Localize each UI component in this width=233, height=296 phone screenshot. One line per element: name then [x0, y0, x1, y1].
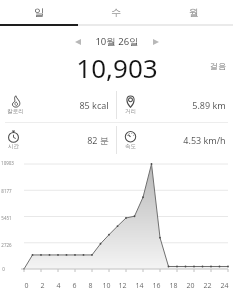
- staticText: 82 분: [87, 134, 109, 146]
- staticText: 12: [118, 281, 127, 291]
- staticText: 시간: [8, 143, 19, 150]
- staticText: 10월 26일: [95, 35, 139, 48]
- staticText: 10,903: [76, 50, 158, 82]
- staticText: 월: [189, 6, 199, 19]
- staticText: 16: [152, 281, 161, 291]
- staticText: 14: [135, 281, 144, 291]
- staticText: 6: [72, 281, 77, 291]
- button[interactable]: 월: [155, 0, 233, 24]
- button[interactable]: Previous day: [70, 34, 86, 50]
- button[interactable]: 수: [77, 0, 155, 24]
- staticText: 85 kcal: [79, 99, 109, 111]
- button[interactable]: 속도: [117, 123, 233, 157]
- staticText: 10: [102, 281, 111, 291]
- staticText: 20: [186, 281, 195, 291]
- button[interactable]: 거리: [117, 88, 233, 122]
- staticText: 8177: [1, 188, 12, 194]
- staticText: 5451: [1, 215, 12, 221]
- staticText: 22: [203, 281, 212, 291]
- staticText: 칼로리: [7, 108, 24, 115]
- staticText: 수: [111, 6, 121, 19]
- staticText: 걸음: [210, 61, 226, 71]
- staticText: 2: [40, 281, 45, 291]
- staticText: 4.53 km/h: [183, 134, 226, 146]
- staticText: 2726: [1, 242, 12, 248]
- staticText: 5.89 km: [192, 99, 226, 111]
- staticText: 0: [24, 281, 29, 291]
- button[interactable]: Next day: [148, 34, 164, 50]
- staticText: 일: [34, 6, 44, 19]
- button[interactable]: 칼로리: [0, 88, 116, 122]
- staticText: 4: [56, 281, 61, 291]
- button[interactable]: 일: [0, 0, 77, 24]
- staticText: 0: [2, 266, 5, 272]
- staticText: 18: [169, 281, 178, 291]
- staticText: 24: [220, 281, 229, 291]
- button[interactable]: 시간: [0, 123, 116, 157]
- staticText: 거리: [125, 108, 136, 115]
- staticText: 8: [88, 281, 93, 291]
- staticText: 10903: [1, 160, 14, 166]
- staticText: 속도: [125, 143, 136, 150]
